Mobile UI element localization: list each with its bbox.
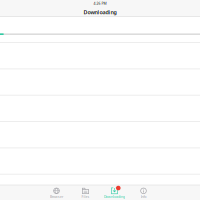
button[interactable]: Info (129, 185, 158, 200)
button[interactable]: Downloading (100, 185, 129, 200)
staticText: Downloading (83, 9, 116, 16)
staticText: Info (140, 194, 146, 199)
staticText: Browser (50, 194, 63, 199)
staticText: Files (81, 194, 89, 199)
button[interactable]: Files (71, 185, 100, 200)
button[interactable]: Browser (42, 185, 71, 200)
staticText: Downloading (104, 194, 125, 199)
staticText: 4:26 PM (93, 1, 106, 6)
